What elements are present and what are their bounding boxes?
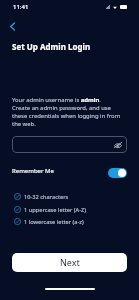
staticText: Remember Me <box>12 167 54 175</box>
staticText: Your admin username is admin. Create an … <box>12 96 137 128</box>
button[interactable]: Remember Me toggle <box>108 168 127 178</box>
button[interactable]: Show password <box>12 136 127 153</box>
staticText: Next <box>60 257 80 269</box>
staticText: 1 lowercase letter (a-z) <box>24 218 84 226</box>
button[interactable]: Back <box>3 17 21 35</box>
staticText: 11:41 <box>13 3 29 11</box>
button[interactable]: Show password <box>112 139 124 151</box>
staticText: 1 uppercase letter (A-Z) <box>24 206 86 214</box>
staticText: 10-32 characters <box>24 193 69 201</box>
staticText: Set Up Admin Login <box>12 41 91 52</box>
button[interactable]: Next <box>12 253 127 272</box>
